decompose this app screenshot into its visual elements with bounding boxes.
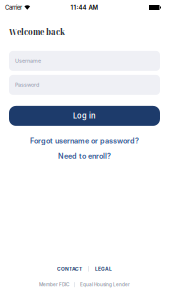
staticText: Member FDIC <box>39 282 69 287</box>
button[interactable]: Need to enroll? <box>58 152 111 160</box>
staticText: CONTACT <box>57 266 82 272</box>
button[interactable]: LEGAL <box>95 266 112 272</box>
staticText: 11:44 AM <box>70 4 98 11</box>
staticText: Equal Housing Lender <box>80 282 130 287</box>
staticText: Password <box>15 82 39 88</box>
staticText: Username <box>15 58 41 64</box>
staticText: Welcome back <box>9 26 65 37</box>
staticText: LEGAL <box>95 266 112 272</box>
button[interactable]: CONTACT <box>57 266 82 272</box>
button[interactable]: Forgot username or password? <box>30 136 139 145</box>
button[interactable]: Log in <box>9 106 160 126</box>
staticText: Forgot username or password? <box>30 136 139 145</box>
button[interactable]: Password <box>9 75 160 95</box>
button[interactable]: Username <box>9 51 160 71</box>
staticText: Log in <box>73 111 96 120</box>
staticText: Carrier <box>5 4 22 11</box>
staticText: Need to enroll? <box>58 152 111 160</box>
